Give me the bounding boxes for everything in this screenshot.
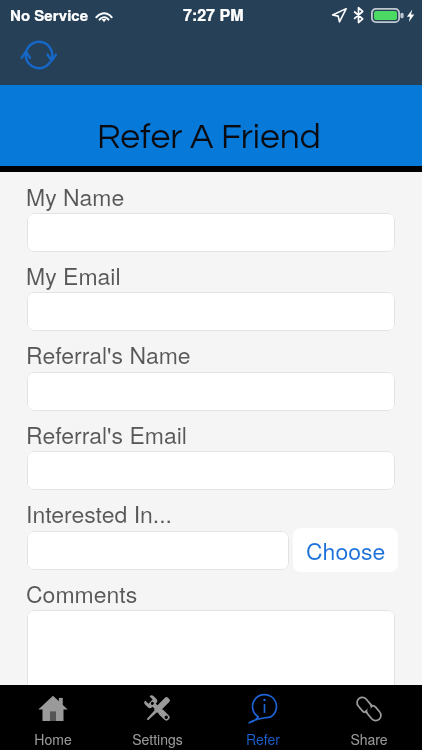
staticText: Choose xyxy=(306,534,386,567)
staticText: My Email xyxy=(26,259,121,292)
staticText: 7:27 PM xyxy=(183,3,244,26)
staticText: Settings xyxy=(132,729,183,749)
staticText: Share xyxy=(350,729,388,749)
staticText: Interested In... xyxy=(26,497,173,530)
button[interactable]: Home xyxy=(0,685,105,750)
staticText: Referral's Email xyxy=(26,418,187,451)
button[interactable]: Settings xyxy=(105,685,210,750)
staticText: Comments xyxy=(26,577,138,610)
staticText: Referral's Name xyxy=(26,338,191,371)
button[interactable] xyxy=(27,213,395,252)
button[interactable] xyxy=(27,451,395,490)
staticText: Home xyxy=(34,729,72,749)
staticText: No Service xyxy=(10,4,88,25)
button[interactable]: Choose xyxy=(293,528,398,572)
button[interactable] xyxy=(27,292,395,331)
button[interactable] xyxy=(27,610,395,710)
button[interactable]: Refer xyxy=(210,685,316,750)
staticText: Refer xyxy=(246,729,280,749)
staticText: My Name xyxy=(26,180,125,213)
button[interactable] xyxy=(27,531,289,570)
button[interactable] xyxy=(27,372,395,411)
button[interactable]: Share xyxy=(316,685,422,750)
button[interactable]: Refresh xyxy=(17,33,61,77)
staticText: Refer A Friend xyxy=(97,119,321,155)
